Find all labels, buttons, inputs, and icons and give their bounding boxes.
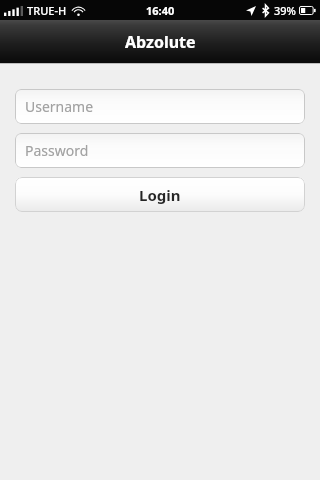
staticText: Abzolute [125,31,196,53]
staticText: Password [25,141,89,160]
staticText: TRUE-H [27,3,67,18]
staticText: 16:40 [146,3,175,18]
button[interactable]: Password [15,133,305,168]
button[interactable]: Username [15,89,305,124]
staticText: 39% [274,3,296,18]
button[interactable]: Login [15,177,305,212]
staticText: Login [139,185,181,205]
staticText: Username [25,97,94,116]
